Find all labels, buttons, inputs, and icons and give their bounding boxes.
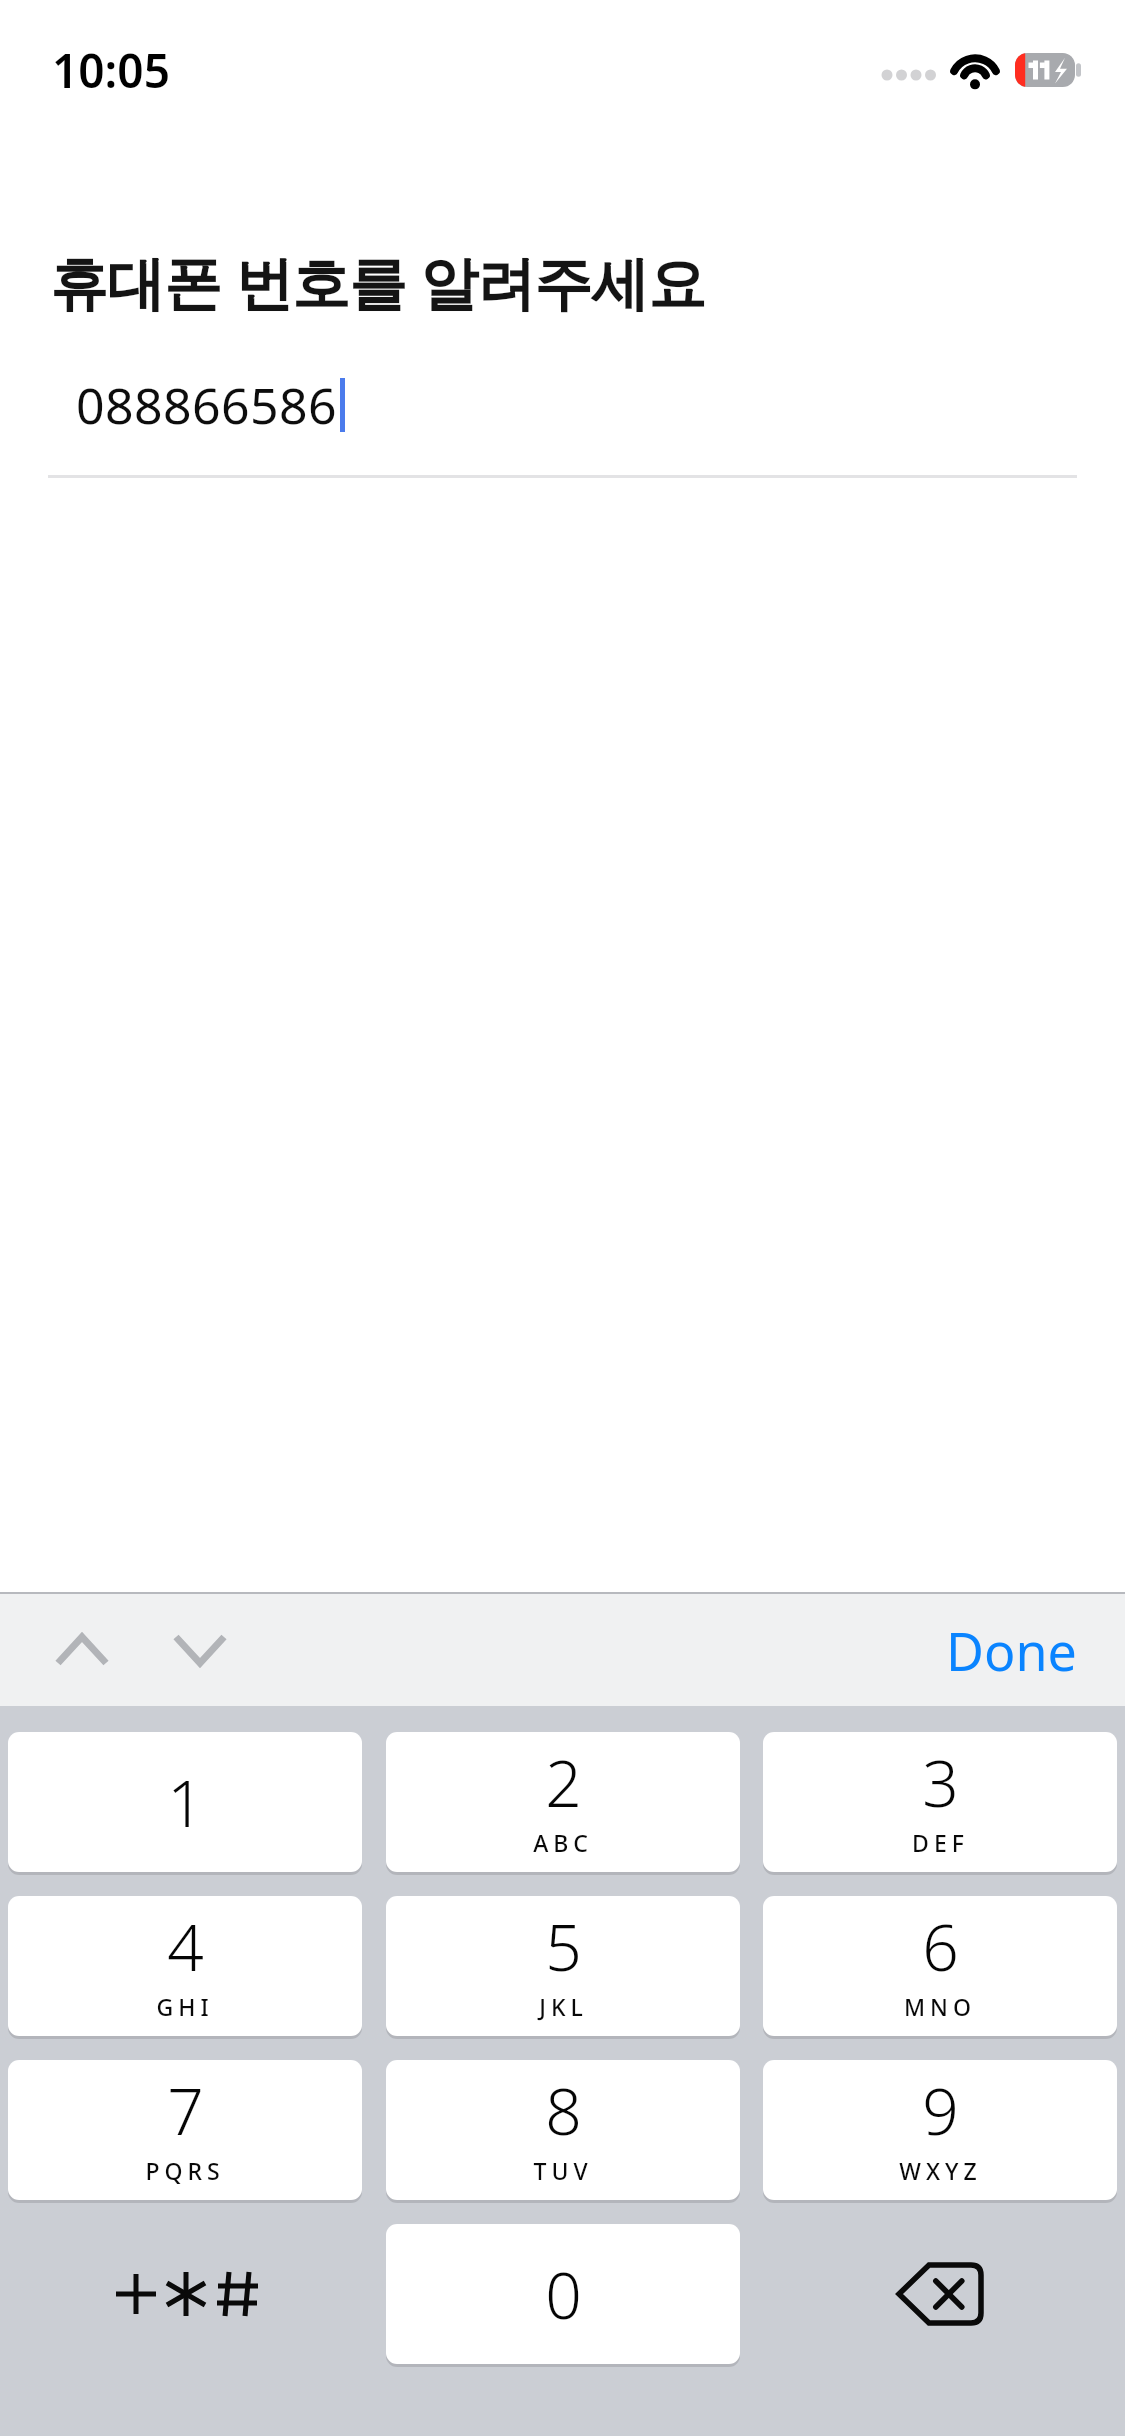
staticText: 4 [167, 1903, 204, 1990]
button[interactable]: 4 [8, 1896, 362, 2036]
staticText: 휴대폰 번호를 알려주세요 [50, 242, 706, 321]
button[interactable]: 1 [8, 1732, 362, 1872]
button[interactable]: Next field [152, 1602, 248, 1698]
button[interactable]: Previous field [34, 1602, 130, 1698]
button[interactable]: 0 [386, 2224, 740, 2364]
staticText: PQRS [145, 2155, 225, 2186]
button[interactable]: Plus, star, hash [8, 2224, 362, 2364]
staticText: DEF [912, 1827, 969, 1858]
button[interactable]: 9 [763, 2060, 1117, 2200]
button[interactable]: 6 [763, 1896, 1117, 2036]
staticText: 1 [167, 1759, 204, 1846]
button[interactable]: Done [930, 1603, 1093, 1698]
button[interactable]: 8 [386, 2060, 740, 2200]
staticText: 7 [167, 2067, 204, 2154]
staticText: JKL [539, 1991, 588, 2022]
button[interactable]: Backspace [763, 2224, 1117, 2364]
staticText: Done [946, 1615, 1077, 1686]
staticText: 5 [545, 1903, 582, 1990]
staticText: WXYZ [899, 2155, 982, 2186]
button[interactable]: 7 [8, 2060, 362, 2200]
button[interactable]: 3 [763, 1732, 1117, 1872]
staticText: 0 [545, 2251, 582, 2338]
staticText: 10:05 [52, 39, 170, 102]
button[interactable]: 088866586 [0, 371, 1125, 478]
staticText: GHI [156, 1991, 214, 2022]
staticText: 6 [922, 1903, 959, 1990]
staticText: 8 [545, 2067, 582, 2154]
staticText: 088866586 [76, 371, 337, 439]
staticText: 2 [545, 1739, 582, 1826]
button[interactable]: 2 [386, 1732, 740, 1872]
staticText: TUV [533, 2155, 593, 2186]
staticText: ABC [533, 1827, 593, 1858]
staticText: 3 [922, 1739, 959, 1826]
staticText: MNO [904, 1991, 976, 2022]
button[interactable]: 5 [386, 1896, 740, 2036]
staticText: 9 [922, 2067, 959, 2154]
